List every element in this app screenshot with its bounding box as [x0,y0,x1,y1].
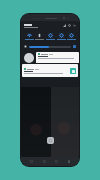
button[interactable]: Expand [73,24,76,27]
button[interactable]: Recents [30,160,33,163]
button[interactable] [24,33,34,40]
button[interactable]: Auto brightness [73,45,76,48]
button[interactable]: Back [55,160,58,163]
button[interactable] [45,33,55,40]
button[interactable]: Settings [68,24,71,27]
button[interactable] [29,46,71,48]
button[interactable] [56,33,66,40]
button[interactable]: Contact photo [24,53,34,63]
button[interactable]: App [47,137,54,144]
button[interactable]: Home [43,160,46,163]
button[interactable]: Signal [63,24,66,27]
button[interactable] [34,33,44,40]
button[interactable] [66,33,76,40]
button[interactable]: Open [22,64,78,77]
button[interactable]: Open [70,68,76,74]
button[interactable]: Brightness [24,45,27,48]
button[interactable] [36,52,79,63]
